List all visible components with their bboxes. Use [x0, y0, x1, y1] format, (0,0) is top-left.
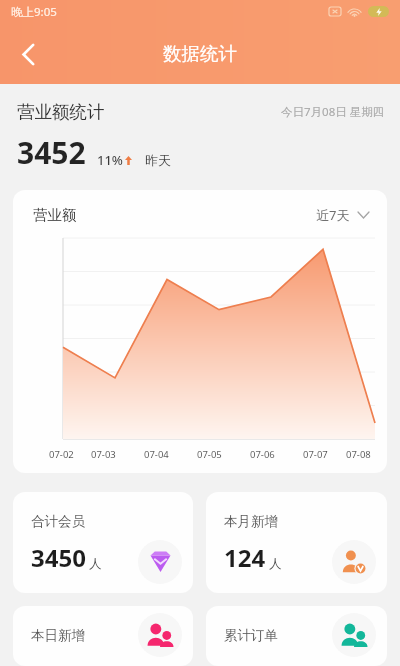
staticText: 07-02	[49, 448, 74, 461]
staticText: 07-06	[250, 448, 275, 461]
staticText: 营业额	[33, 206, 77, 224]
staticText: 07-08	[346, 448, 371, 461]
button[interactable]: 近7天	[316, 206, 369, 224]
staticText: 07-07	[303, 448, 328, 461]
staticText: 124	[224, 541, 266, 574]
staticText: 本月新增	[224, 513, 278, 530]
staticText: 11%	[97, 151, 123, 169]
button[interactable]: 营业额	[13, 190, 387, 473]
staticText: 近7天	[316, 206, 350, 224]
staticText: 昨天	[145, 152, 171, 168]
staticText: 晚上9:05	[11, 4, 57, 20]
staticText: 3452	[17, 132, 86, 173]
staticText: 今日7月08日 星期四	[281, 104, 385, 120]
staticText: 人	[269, 556, 282, 572]
staticText: 人	[89, 556, 102, 572]
staticText: 本日新增	[31, 627, 85, 644]
staticText: 07-05	[197, 448, 222, 461]
button[interactable]: 本月新增	[206, 492, 387, 593]
button[interactable]: Back	[5, 31, 51, 77]
button[interactable]: 累计订单	[206, 606, 387, 666]
button[interactable]: 合计会员	[13, 492, 193, 593]
staticText: 3450	[31, 541, 86, 574]
button[interactable]: 本日新增	[13, 606, 193, 666]
staticText: 营业额统计	[17, 101, 105, 123]
staticText: 累计订单	[224, 627, 278, 644]
staticText: 合计会员	[31, 513, 85, 530]
staticText: 07-04	[144, 448, 169, 461]
staticText: 数据统计	[163, 42, 237, 65]
staticText: 07-03	[91, 448, 116, 461]
